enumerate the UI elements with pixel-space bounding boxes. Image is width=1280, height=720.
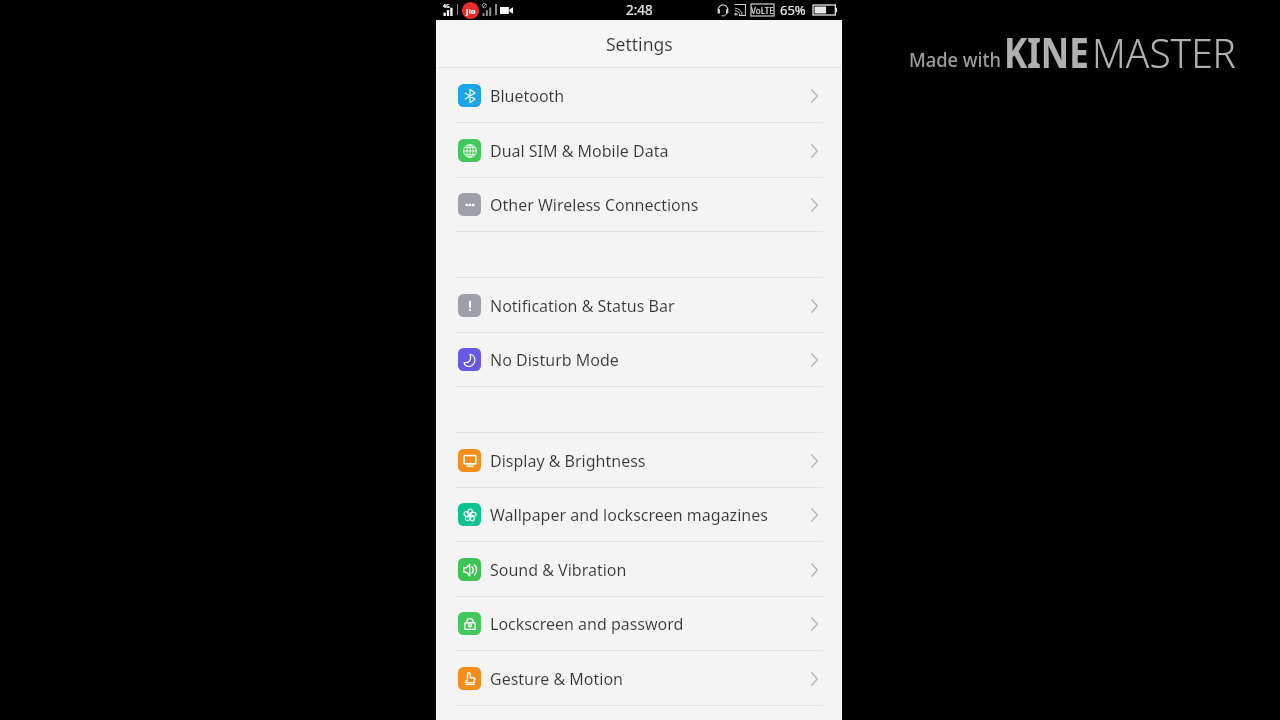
staticText: No Disturb Mode bbox=[490, 349, 619, 371]
staticText: Notification & Status Bar bbox=[490, 295, 675, 317]
button[interactable]: Dual SIM & Mobile Data bbox=[436, 123, 842, 178]
button[interactable]: Wallpaper and lockscreen magazines bbox=[436, 487, 842, 542]
staticText: Gesture & Motion bbox=[490, 668, 624, 690]
staticText: 2:48 bbox=[626, 1, 653, 19]
button[interactable]: Lockscreen and password bbox=[436, 596, 842, 651]
staticText: Display & Brightness bbox=[490, 450, 646, 472]
staticText: KINE bbox=[1004, 24, 1089, 80]
staticText: Sound & Vibration bbox=[490, 559, 627, 581]
staticText: 4G bbox=[443, 2, 450, 9]
staticText: VoLTE bbox=[751, 5, 774, 16]
button[interactable]: No Disturb Mode bbox=[436, 332, 842, 387]
button[interactable]: Gesture & Motion bbox=[436, 651, 842, 706]
staticText: Made with bbox=[909, 46, 1001, 73]
staticText: Settings bbox=[606, 32, 673, 56]
staticText: Lockscreen and password bbox=[490, 613, 684, 635]
button[interactable]: Notification & Status Bar bbox=[436, 278, 842, 333]
button[interactable]: Sound & Vibration bbox=[436, 542, 842, 597]
staticText: Jio bbox=[466, 6, 476, 16]
staticText: 65% bbox=[780, 1, 806, 19]
staticText: Dual SIM & Mobile Data bbox=[490, 140, 669, 162]
staticText: Wallpaper and lockscreen magazines bbox=[490, 504, 768, 526]
button[interactable]: Bluetooth bbox=[436, 68, 842, 123]
staticText: MASTER bbox=[1092, 24, 1237, 80]
button[interactable]: Other Wireless Connections bbox=[436, 177, 842, 232]
staticText: Bluetooth bbox=[490, 85, 565, 107]
button[interactable]: Display & Brightness bbox=[436, 433, 842, 488]
staticText: Other Wireless Connections bbox=[490, 194, 699, 216]
